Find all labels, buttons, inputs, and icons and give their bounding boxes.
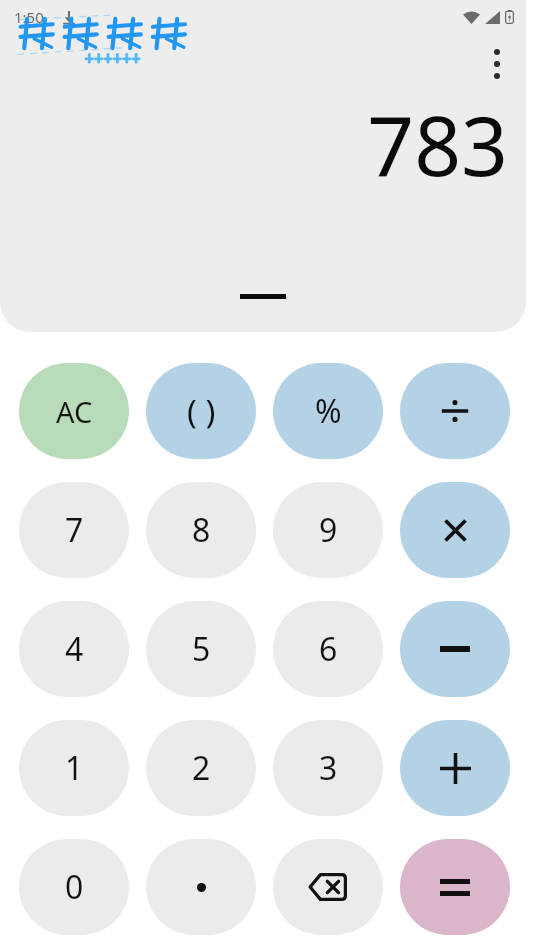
button[interactable]: 4	[19, 601, 129, 697]
staticText: 2	[192, 746, 211, 790]
staticText: %	[315, 389, 342, 433]
staticText: 7	[65, 508, 84, 552]
staticText: 1	[65, 746, 84, 790]
staticText: 4	[65, 627, 84, 671]
button[interactable]	[146, 839, 256, 935]
button[interactable]: Expand history	[222, 284, 304, 309]
button[interactable]	[400, 601, 510, 697]
button[interactable]: 5	[146, 601, 256, 697]
button[interactable]: %	[273, 363, 383, 459]
staticText: 0	[65, 865, 84, 909]
staticText: 9	[319, 508, 338, 552]
button[interactable]: AC	[19, 363, 129, 459]
button[interactable]: 2	[146, 720, 256, 816]
button[interactable]: 6	[273, 601, 383, 697]
staticText: 3	[319, 746, 338, 790]
button[interactable]: 9	[273, 482, 383, 578]
button[interactable]: 3	[273, 720, 383, 816]
button[interactable]	[400, 839, 510, 935]
button[interactable]	[400, 720, 510, 816]
staticText: 783	[367, 88, 508, 200]
staticText: 6	[319, 627, 338, 671]
button[interactable]: ( )	[146, 363, 256, 459]
button[interactable]: 8	[146, 482, 256, 578]
button[interactable]: More options	[473, 40, 521, 88]
button[interactable]: 7	[19, 482, 129, 578]
staticText: AC	[56, 392, 93, 431]
staticText: ( )	[187, 389, 216, 434]
button[interactable]: Backspace	[273, 839, 383, 935]
staticText: 8	[192, 508, 211, 552]
button[interactable]	[400, 482, 510, 578]
staticText: 5	[192, 627, 211, 671]
button[interactable]: 1	[19, 720, 129, 816]
button[interactable]	[400, 363, 510, 459]
staticText: 1:50	[14, 7, 44, 27]
button[interactable]: 0	[19, 839, 129, 935]
